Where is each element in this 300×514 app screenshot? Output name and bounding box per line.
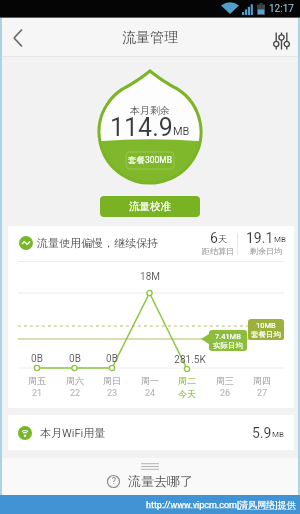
staticText: 5.9 (252, 425, 272, 441)
staticText: MB (274, 235, 286, 244)
staticText: 流量去哪了 (128, 473, 193, 489)
staticText: 21 (28, 388, 46, 399)
staticText: 本月剩余 (0, 104, 300, 117)
staticText: 实际日均 (213, 341, 243, 350)
staticText: http://www.vipcm.com[清风网络]提供 (146, 499, 296, 510)
button[interactable]: 本月WiFi用量 (8, 415, 294, 450)
staticText: 套餐日均 (251, 330, 281, 339)
staticText: MB (173, 125, 190, 138)
staticText: 7.41MB (215, 332, 241, 341)
staticText: 流量管理 (122, 29, 178, 47)
button[interactable] (262, 18, 300, 57)
staticText: 今天 (178, 388, 196, 399)
staticText: 18M (125, 271, 175, 283)
staticText: 周日 (103, 375, 121, 386)
staticText: 12:17 (269, 3, 294, 15)
staticText: 23 (103, 388, 121, 399)
staticText: 22 (66, 388, 84, 399)
staticText: 套餐300MB (0, 155, 300, 166)
button[interactable]: 流量校准 (100, 196, 200, 217)
staticText: 27 (253, 388, 271, 399)
staticText: 距结算日 (202, 246, 234, 256)
staticText: 6 (210, 230, 218, 246)
staticText: 周二 (178, 375, 196, 386)
staticText: 19.1 (246, 230, 274, 246)
staticText: 24 (141, 388, 159, 399)
staticText: 流量使用偏慢，继续保持 (37, 236, 158, 250)
staticText: 周三 (216, 375, 234, 386)
staticText: 周五 (28, 375, 46, 386)
staticText: ? (111, 476, 117, 487)
staticText: 26 (216, 388, 234, 399)
staticText: 0B (12, 353, 62, 365)
staticText: 周四 (253, 375, 271, 386)
button[interactable]: ? (0, 458, 300, 495)
staticText: 10MB (256, 321, 276, 330)
staticText: 流量校准 (129, 200, 171, 213)
staticText: 周六 (66, 375, 84, 386)
staticText: 周一 (141, 375, 159, 386)
button[interactable] (0, 18, 36, 57)
staticText: 本月WiFi用量 (40, 426, 106, 440)
staticText: 281.5K (165, 354, 215, 366)
staticText: 114.9 (110, 113, 173, 142)
staticText: 天 (218, 233, 227, 244)
staticText: 0B (87, 353, 137, 365)
staticText: MB (272, 430, 284, 439)
staticText: 剩余日均 (250, 246, 282, 256)
staticText: 0B (50, 353, 100, 365)
